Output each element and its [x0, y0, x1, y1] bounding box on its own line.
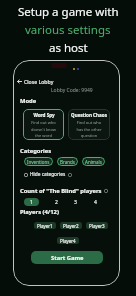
- staticText: Player3: [89, 223, 105, 229]
- staticText: Close Lobby: [24, 78, 54, 85]
- staticText: Animals: [85, 159, 102, 165]
- other: Back: [17, 79, 22, 84]
- button[interactable]: 3: [72, 198, 78, 206]
- button[interactable]: Word Spy: [23, 109, 64, 140]
- staticText: Question Chaos: [71, 112, 107, 118]
- button[interactable]: Start Game: [31, 251, 103, 264]
- staticText: Start Game: [51, 254, 84, 262]
- staticText: Player2: [63, 223, 79, 229]
- staticText: Categories: [20, 147, 52, 155]
- button[interactable]: Player1: [34, 222, 56, 229]
- staticText: Inventions: [27, 159, 50, 165]
- button[interactable]: Player2: [60, 222, 82, 229]
- other: Info: [104, 189, 108, 193]
- button[interactable]: Hide categories: [24, 171, 72, 178]
- staticText: Hide categories: [30, 171, 66, 178]
- staticText: Lobby Code: 9949: [51, 87, 93, 94]
- button[interactable]: 4: [92, 198, 98, 206]
- button[interactable]: Inventions: [24, 157, 53, 166]
- staticText: as host: [49, 40, 88, 56]
- staticText: Player4: [60, 238, 76, 244]
- staticText: 2: [55, 199, 58, 206]
- staticText: 1: [30, 199, 33, 206]
- other: Info: [68, 173, 72, 177]
- staticText: Find out who doesn't know the word: [31, 120, 56, 138]
- button[interactable]: Brands: [57, 157, 78, 166]
- staticText: Setup a game with: [18, 4, 119, 20]
- staticText: various settings: [25, 22, 111, 38]
- button[interactable]: Back: [17, 78, 54, 85]
- staticText: Brands: [60, 159, 75, 165]
- button[interactable]: 1: [24, 198, 39, 206]
- staticText: Word Spy: [33, 112, 55, 118]
- staticText: 4: [94, 199, 97, 206]
- staticText: Player1: [37, 223, 53, 229]
- button[interactable]: 2: [53, 198, 59, 206]
- staticText: Find out who has the other question: [76, 120, 102, 138]
- button[interactable]: Question Chaos: [68, 109, 110, 140]
- staticText: Mode: [20, 97, 37, 105]
- button[interactable]: Player4: [57, 237, 79, 244]
- button[interactable]: Animals: [82, 157, 105, 166]
- staticText: Players (4/12): [20, 208, 59, 216]
- button[interactable]: Player3: [86, 222, 108, 229]
- staticText: 3: [74, 199, 77, 206]
- staticText: Count of "The Blind" players: [20, 187, 102, 195]
